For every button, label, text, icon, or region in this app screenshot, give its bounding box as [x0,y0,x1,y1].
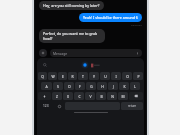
staticText: Hey, are you still coming by later? [43,3,100,8]
button[interactable]: E [58,72,67,80]
button[interactable]: Voice input [81,61,89,69]
button[interactable]: Hey, are you still coming by later? [39,1,104,10]
staticText: A [45,84,48,89]
staticText: K [123,84,126,89]
staticText: Z [56,94,58,99]
button[interactable]: W [48,72,57,80]
staticText: D [68,84,71,89]
button[interactable]: Yeah! I should be there around 6 [79,13,142,22]
staticText: Message [53,51,136,56]
staticText: return [128,104,137,108]
staticText: G [90,84,93,89]
button[interactable]: Perfect, do you want me to grab food? [39,29,105,43]
staticText: I [115,74,117,79]
staticText: X [67,94,69,99]
staticText: Delivered [131,23,142,26]
button[interactable]: I [111,72,121,80]
button[interactable]: X [63,92,73,100]
button[interactable]: N [107,92,117,100]
button[interactable]: Add attachment [39,49,47,57]
staticText: L [134,84,136,89]
button[interactable]: 123 [38,102,53,110]
button[interactable]: F [75,82,85,90]
button[interactable]: L [130,82,140,90]
staticText: M [121,94,125,99]
staticText: P [137,74,140,79]
staticText: 123 [43,104,49,108]
button[interactable]: R [68,72,77,80]
button[interactable]: K [119,82,129,90]
staticText: B [100,94,103,99]
button[interactable]: Message [50,49,142,57]
button[interactable]: Emoji [54,102,64,110]
button[interactable]: P [133,72,143,80]
staticText: V [89,94,92,99]
staticText: Yeah! I should be there around 6 [83,15,138,20]
staticText: Q [41,74,44,79]
button[interactable]: A [41,82,52,90]
staticText: O [126,74,129,79]
button[interactable]: D [64,82,74,90]
button[interactable]: U [100,72,110,80]
staticText: J [113,84,114,89]
button[interactable]: M [118,92,128,100]
staticText: C [78,94,81,99]
button[interactable]: Search [42,62,48,68]
staticText: H [101,84,104,89]
button[interactable]: Q [38,72,47,80]
staticText: N [111,94,114,99]
staticText: E [62,74,64,79]
button[interactable]: Translate [91,63,100,68]
button[interactable]: H [97,82,107,90]
button[interactable]: Shift [38,92,51,100]
button[interactable]: Z [52,92,62,100]
staticText: U [104,74,107,79]
staticText: Y [93,74,95,79]
button[interactable]: V [85,92,95,100]
button[interactable]: return [121,102,143,110]
button[interactable]: J [108,82,118,90]
button[interactable]: S [53,82,63,90]
staticText: Perfect, do you want me to grab food? [43,31,101,41]
button[interactable]: Y [89,72,99,80]
staticText: W [51,74,55,79]
button[interactable]: G [86,82,96,90]
button[interactable]: Backspace [129,92,143,100]
button[interactable]: T [78,72,88,80]
staticText: T [82,74,84,79]
staticText: R [71,74,74,79]
staticText: S [57,84,59,89]
staticText: F [79,84,81,89]
button[interactable]: O [122,72,132,80]
button[interactable]: B [96,92,106,100]
button[interactable]: C [74,92,84,100]
